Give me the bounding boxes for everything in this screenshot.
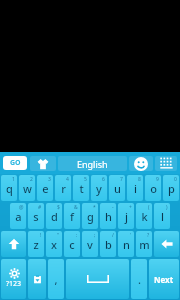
staticText: 8 bbox=[138, 176, 141, 183]
staticText: ? bbox=[147, 232, 150, 239]
staticText: & bbox=[74, 204, 78, 211]
staticText: 1 bbox=[12, 176, 15, 183]
staticText: o bbox=[150, 181, 157, 196]
staticText: n bbox=[123, 237, 130, 252]
button[interactable]: j bbox=[118, 203, 134, 229]
staticText: * bbox=[93, 204, 96, 211]
button[interactable]: Keyboard layouts bbox=[155, 156, 177, 171]
button[interactable]: h bbox=[100, 203, 116, 229]
staticText: h bbox=[105, 209, 112, 224]
staticText: - bbox=[112, 204, 114, 211]
staticText: Next bbox=[154, 274, 174, 285]
button[interactable]: b bbox=[100, 231, 116, 257]
staticText: l bbox=[161, 209, 164, 224]
staticText: b bbox=[105, 237, 112, 252]
button[interactable]: u bbox=[109, 175, 125, 201]
button[interactable]: s bbox=[28, 203, 44, 229]
staticText: ) bbox=[166, 204, 168, 211]
button[interactable]: Emoji bbox=[129, 156, 153, 171]
staticText: @ bbox=[19, 204, 24, 211]
button[interactable]: Themes bbox=[30, 156, 56, 171]
button[interactable]: q bbox=[1, 175, 17, 201]
button[interactable]: p bbox=[163, 175, 179, 201]
staticText: p bbox=[168, 181, 175, 196]
button[interactable]: d bbox=[46, 203, 62, 229]
staticText: w bbox=[23, 181, 32, 196]
button[interactable]: r bbox=[55, 175, 71, 201]
staticText: a bbox=[15, 209, 22, 224]
staticText: 4 bbox=[66, 176, 69, 183]
staticText: # bbox=[38, 204, 42, 211]
staticText: 2 bbox=[30, 176, 33, 183]
staticText: q bbox=[6, 181, 13, 196]
staticText: z bbox=[33, 237, 39, 252]
staticText: , bbox=[54, 272, 58, 287]
staticText: 5 bbox=[84, 176, 87, 183]
staticText: + bbox=[129, 204, 132, 211]
button[interactable]: English bbox=[58, 156, 127, 171]
staticText: ! bbox=[40, 232, 42, 239]
button[interactable]: k bbox=[136, 203, 152, 229]
button[interactable]: Next bbox=[149, 259, 179, 299]
button[interactable]: l bbox=[154, 203, 170, 229]
button[interactable]: z bbox=[28, 231, 44, 257]
staticText: j bbox=[125, 209, 128, 224]
staticText: ; bbox=[94, 232, 96, 239]
button[interactable]: a bbox=[10, 203, 26, 229]
button[interactable]: e bbox=[37, 175, 53, 201]
staticText: GO bbox=[10, 158, 21, 168]
staticText: . bbox=[138, 272, 141, 287]
staticText: y bbox=[96, 181, 102, 196]
button[interactable]: Symbols bbox=[1, 259, 26, 299]
button[interactable]: o bbox=[145, 175, 161, 201]
staticText: 0 bbox=[174, 176, 177, 183]
button[interactable]: t bbox=[73, 175, 89, 201]
staticText: 9 bbox=[156, 176, 159, 183]
button[interactable]: c bbox=[64, 231, 80, 257]
button[interactable]: m bbox=[136, 231, 152, 257]
staticText: u bbox=[114, 181, 121, 196]
staticText: f bbox=[70, 209, 74, 224]
staticText: $ bbox=[57, 204, 60, 211]
staticText: : bbox=[76, 232, 78, 239]
staticText: m bbox=[139, 237, 150, 252]
staticText: r bbox=[61, 181, 66, 196]
button[interactable]: n bbox=[118, 231, 134, 257]
staticText: " bbox=[57, 232, 60, 239]
staticText: 7 bbox=[120, 176, 123, 183]
button[interactable]: Shift bbox=[1, 231, 26, 257]
staticText: x bbox=[51, 237, 57, 252]
staticText: e bbox=[42, 181, 49, 196]
staticText: g bbox=[87, 209, 94, 224]
button[interactable]: Delete bbox=[154, 231, 179, 257]
button[interactable]: Space bbox=[66, 259, 129, 299]
staticText: d bbox=[51, 209, 58, 224]
button[interactable]: x bbox=[46, 231, 62, 257]
staticText: c bbox=[69, 237, 75, 252]
button[interactable]: y bbox=[91, 175, 107, 201]
staticText: ( bbox=[148, 204, 150, 211]
staticText: 3 bbox=[48, 176, 51, 183]
button[interactable]: , bbox=[48, 259, 64, 299]
button[interactable]: w bbox=[19, 175, 35, 201]
button[interactable]: . bbox=[131, 259, 147, 299]
staticText: v bbox=[87, 237, 93, 252]
button[interactable]: v bbox=[82, 231, 98, 257]
staticText: k bbox=[141, 209, 148, 224]
button[interactable]: g bbox=[82, 203, 98, 229]
staticText: English bbox=[77, 158, 108, 170]
staticText: t bbox=[79, 181, 84, 196]
button[interactable]: GO bbox=[3, 156, 27, 170]
staticText: i bbox=[134, 181, 137, 196]
staticText: ' bbox=[130, 232, 132, 239]
staticText: ?123 bbox=[6, 279, 22, 289]
staticText: s bbox=[33, 209, 39, 224]
button[interactable]: f bbox=[64, 203, 80, 229]
button[interactable]: i bbox=[127, 175, 143, 201]
button[interactable]: Clipboard bbox=[28, 259, 46, 299]
staticText: 6 bbox=[102, 176, 105, 183]
staticText: / bbox=[112, 232, 114, 239]
